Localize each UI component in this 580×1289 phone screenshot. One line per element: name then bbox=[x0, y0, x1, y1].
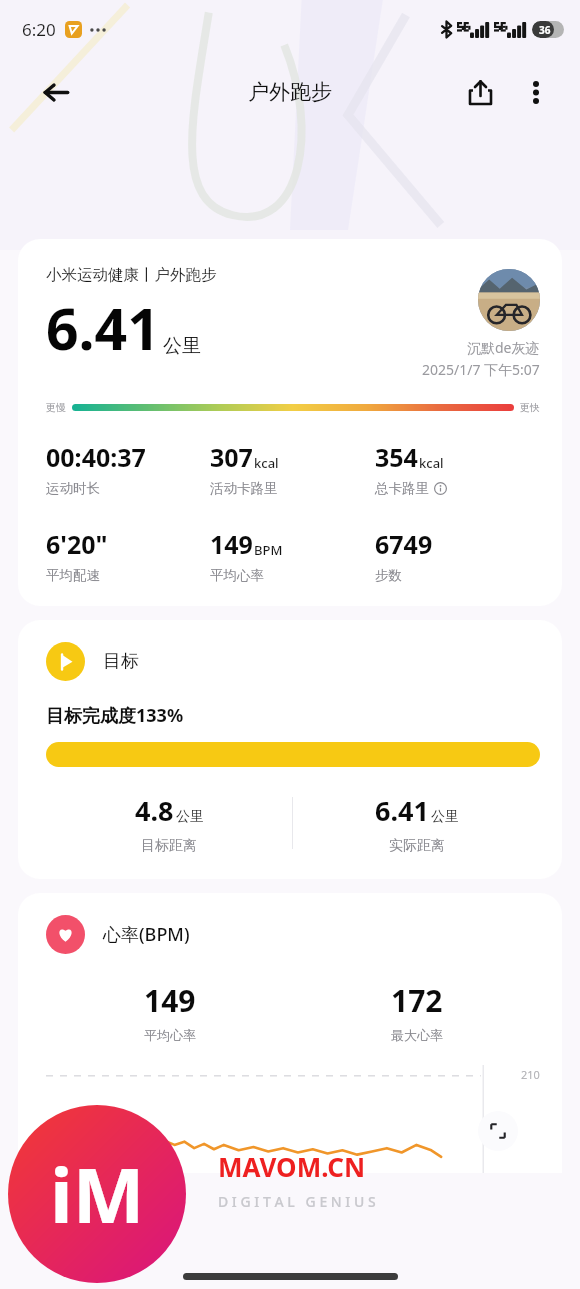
button[interactable]: 心率(BPM) bbox=[18, 893, 562, 1173]
staticText: 沉默de灰迹 bbox=[467, 338, 540, 357]
staticText: 6:20 bbox=[22, 18, 56, 41]
staticText: 6749 bbox=[375, 527, 433, 561]
staticText: 活动卡路里 bbox=[210, 480, 278, 497]
staticText: 172 bbox=[391, 980, 443, 1021]
staticText: 总卡路里 bbox=[375, 480, 429, 497]
staticText: 6.41 bbox=[46, 289, 160, 367]
staticText: 心率(BPM) bbox=[103, 922, 190, 947]
staticText: iM bbox=[50, 1142, 145, 1246]
button[interactable]: More options bbox=[514, 70, 558, 114]
staticText: 小米运动健康丨户外跑步 bbox=[46, 265, 217, 285]
staticText: 4.8 bbox=[135, 792, 174, 829]
staticText: 307 bbox=[210, 440, 253, 474]
staticText: 6.41 bbox=[375, 792, 429, 829]
staticText: D I G I T A L G E N I U S bbox=[218, 1192, 376, 1211]
staticText: kcal bbox=[419, 454, 444, 472]
staticText: 目标完成度133% bbox=[46, 703, 184, 728]
staticText: 户外跑步 bbox=[248, 79, 332, 105]
staticText: BPM bbox=[254, 541, 283, 559]
button[interactable]: 目标 bbox=[18, 620, 562, 879]
button[interactable]: Fullscreen bbox=[478, 1111, 518, 1151]
button[interactable]: Share bbox=[458, 70, 502, 114]
staticText: 目标 bbox=[103, 650, 139, 673]
staticText: 更慢 bbox=[46, 401, 66, 414]
staticText: 公里 bbox=[176, 808, 204, 826]
button[interactable]: 小米运动健康丨户外跑步 bbox=[18, 239, 562, 606]
staticText: 公里 bbox=[431, 808, 459, 826]
staticText: 平均心率 bbox=[210, 567, 264, 584]
button[interactable]: Back bbox=[34, 70, 78, 114]
staticText: 平均心率 bbox=[144, 1027, 196, 1043]
staticText: 2025/1/7 下午5:07 bbox=[422, 360, 540, 379]
staticText: 公里 bbox=[163, 334, 201, 358]
staticText: 6'20" bbox=[46, 527, 108, 561]
staticText: 149 bbox=[144, 980, 196, 1021]
staticText: MAVOM.CN bbox=[218, 1149, 366, 1184]
staticText: 最大心率 bbox=[391, 1027, 443, 1043]
staticText: 步数 bbox=[375, 567, 402, 584]
staticText: 00:40:37 bbox=[46, 440, 146, 474]
staticText: 实际距离 bbox=[389, 837, 445, 855]
staticText: kcal bbox=[254, 454, 279, 472]
staticText: 210 bbox=[521, 1067, 540, 1082]
staticText: 354 bbox=[375, 440, 418, 474]
staticText: 更快 bbox=[520, 401, 540, 414]
staticText: 149 bbox=[210, 527, 253, 561]
staticText: 目标距离 bbox=[141, 837, 197, 855]
staticText: 36 bbox=[539, 23, 551, 37]
staticText: 平均配速 bbox=[46, 567, 100, 584]
staticText: 运动时长 bbox=[46, 480, 100, 497]
